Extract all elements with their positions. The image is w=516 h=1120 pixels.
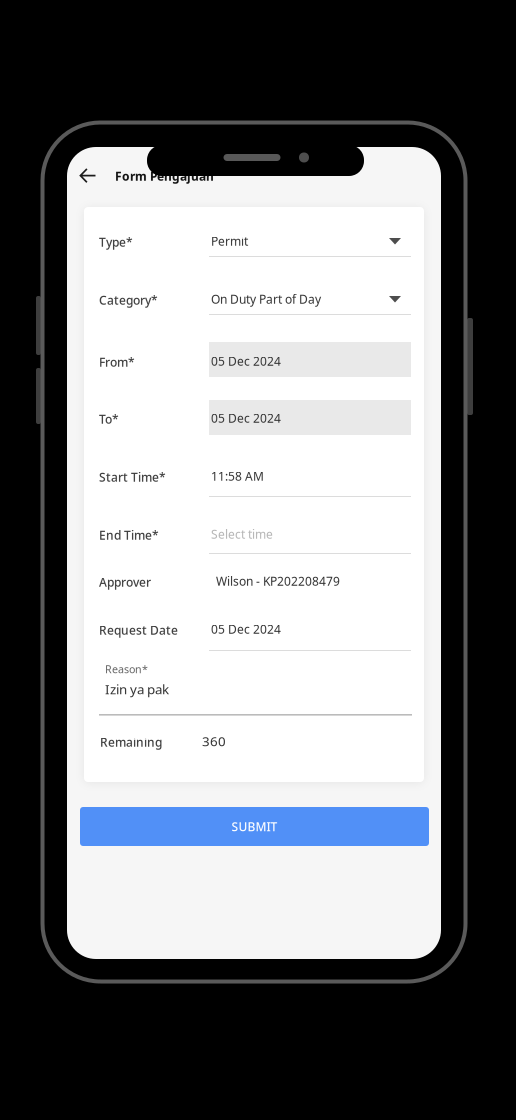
staticText: From* — [99, 354, 135, 370]
button[interactable]: Type* — [99, 224, 412, 260]
staticText: Category* — [99, 292, 158, 308]
staticText: SUBMIT — [231, 818, 277, 834]
staticText: Type* — [99, 234, 133, 250]
staticText: 05 Dec 2024 — [211, 353, 281, 369]
staticText: On Duty Part of Day — [211, 291, 321, 307]
staticText: Form Pengajuan — [115, 168, 214, 184]
staticText: 11:58 AM — [211, 468, 264, 484]
staticText: Reason* — [105, 662, 148, 676]
button[interactable]: Request Date — [99, 614, 412, 651]
staticText: 360 — [202, 732, 226, 750]
staticText: Start Time* — [99, 469, 166, 485]
staticText: Request Date — [99, 622, 178, 638]
button[interactable]: SUBMIT — [80, 807, 429, 846]
button[interactable]: From* — [99, 342, 412, 377]
staticText: 05 Dec 2024 — [211, 410, 281, 426]
staticText: Remaining — [100, 734, 162, 750]
button[interactable]: Back — [70, 159, 106, 193]
staticText: Permit — [211, 233, 248, 249]
staticText: Select time — [211, 526, 273, 542]
staticText: Wilson - KP202208479 — [216, 573, 340, 589]
staticText: 05 Dec 2024 — [211, 621, 281, 637]
staticText: Izin ya pak — [105, 680, 169, 698]
button[interactable]: Reason* — [99, 661, 412, 716]
button[interactable]: Category* — [99, 282, 412, 318]
staticText: To* — [99, 411, 119, 427]
button[interactable]: To* — [99, 400, 412, 435]
staticText: Approver — [99, 574, 151, 590]
button[interactable]: Start Time* — [99, 460, 412, 497]
staticText: End Time* — [99, 527, 159, 543]
button[interactable]: End Time* — [99, 518, 412, 554]
